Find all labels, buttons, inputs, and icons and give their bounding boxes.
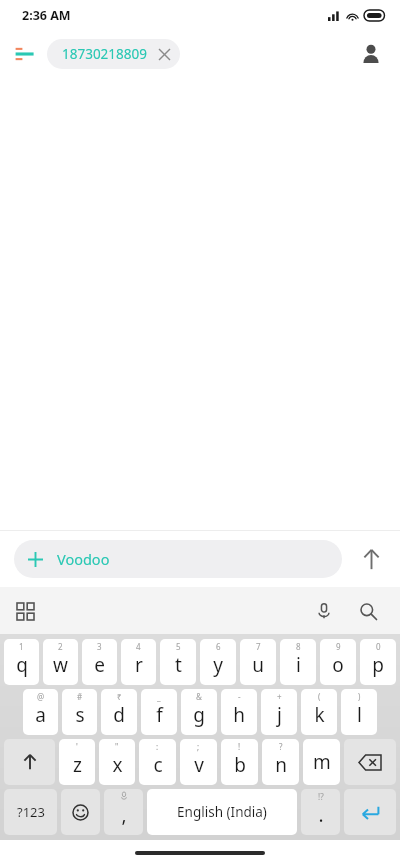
- staticText: -: [238, 691, 241, 702]
- button[interactable]: &: [181, 689, 217, 735]
- staticText: t: [175, 652, 182, 678]
- button[interactable]: Voodoo: [14, 540, 342, 578]
- staticText: ": [115, 741, 119, 752]
- staticText: +: [277, 691, 282, 702]
- button[interactable]: Clipboard: [8, 594, 42, 628]
- staticText: 9: [336, 641, 341, 652]
- staticText: p: [372, 652, 384, 678]
- button[interactable]: 3: [82, 639, 117, 685]
- button[interactable]: 8: [280, 639, 316, 685]
- staticText: j: [277, 702, 282, 728]
- button[interactable]: ": [99, 739, 135, 785]
- staticText: s: [75, 702, 85, 728]
- button[interactable]: -: [221, 689, 257, 735]
- button[interactable]: 0: [360, 639, 396, 685]
- staticText: ,: [121, 802, 127, 828]
- button[interactable]: ): [341, 689, 377, 735]
- button[interactable]: 5: [160, 639, 196, 685]
- staticText: x: [112, 752, 123, 778]
- staticText: #: [77, 691, 83, 702]
- staticText: e: [94, 652, 105, 678]
- staticText: v: [194, 752, 204, 778]
- staticText: 2: [58, 641, 63, 652]
- button[interactable]: Profile: [354, 37, 388, 71]
- button[interactable]: Menu: [8, 38, 40, 70]
- staticText: g: [193, 702, 205, 728]
- staticText: l: [357, 702, 362, 728]
- staticText: y: [213, 652, 223, 678]
- staticText: a: [35, 702, 46, 728]
- button[interactable]: 1: [4, 639, 39, 685]
- staticText: ': [76, 741, 78, 752]
- button[interactable]: ': [59, 739, 95, 785]
- staticText: k: [314, 702, 325, 728]
- button[interactable]: :: [139, 739, 176, 785]
- staticText: 6: [216, 641, 221, 652]
- button[interactable]: 6: [200, 639, 236, 685]
- button[interactable]: 9: [320, 639, 356, 685]
- staticText: c: [153, 752, 163, 778]
- staticText: &: [196, 691, 202, 702]
- button[interactable]: ₹: [101, 689, 137, 735]
- staticText: (: [318, 691, 321, 702]
- button[interactable]: (: [301, 689, 337, 735]
- staticText: w: [53, 652, 68, 678]
- staticText: u: [252, 652, 264, 678]
- button[interactable]: !: [221, 739, 258, 785]
- staticText: z: [73, 752, 82, 778]
- staticText: ): [358, 691, 361, 702]
- staticText: 3: [97, 641, 102, 652]
- staticText: !: [238, 741, 241, 752]
- button[interactable]: English (India): [147, 789, 297, 835]
- staticText: _: [157, 691, 161, 702]
- staticText: :: [156, 741, 159, 752]
- button[interactable]: Search: [350, 593, 386, 629]
- staticText: 7: [256, 641, 261, 652]
- button[interactable]: !?: [301, 789, 340, 835]
- staticText: i: [296, 652, 301, 678]
- button[interactable]: Enter: [344, 789, 396, 835]
- staticText: ₹: [117, 691, 122, 702]
- staticText: 8: [296, 641, 301, 652]
- button[interactable]: ;: [180, 739, 217, 785]
- staticText: f: [156, 702, 163, 728]
- staticText: !?: [318, 791, 324, 802]
- staticText: 1: [19, 641, 24, 652]
- button[interactable]: 18730218809: [47, 39, 180, 69]
- staticText: d: [113, 702, 125, 728]
- staticText: n: [275, 752, 287, 778]
- button[interactable]: m: [303, 739, 340, 785]
- button[interactable]: Backspace: [344, 739, 396, 785]
- button[interactable]: _: [141, 689, 177, 735]
- staticText: b: [234, 752, 246, 778]
- staticText: @: [37, 691, 45, 702]
- button[interactable]: #: [62, 689, 97, 735]
- button[interactable]: ,: [104, 789, 143, 835]
- staticText: 2:36 AM: [22, 7, 71, 24]
- button[interactable]: 4: [121, 639, 156, 685]
- button[interactable]: Shift: [4, 739, 55, 785]
- staticText: ?: [279, 741, 283, 752]
- staticText: ;: [197, 741, 200, 752]
- staticText: 4: [136, 641, 141, 652]
- button[interactable]: ?123: [4, 789, 57, 835]
- button[interactable]: Emoji: [61, 789, 100, 835]
- staticText: ?123: [17, 803, 45, 821]
- staticText: 5: [176, 641, 181, 652]
- button[interactable]: ?: [262, 739, 299, 785]
- staticText: English (India): [177, 803, 267, 821]
- staticText: r: [135, 652, 143, 678]
- staticText: 0: [376, 641, 381, 652]
- staticText: 18730218809: [62, 45, 147, 63]
- button[interactable]: Send: [342, 531, 400, 587]
- staticText: Voodoo: [57, 549, 110, 569]
- button[interactable]: @: [23, 689, 58, 735]
- staticText: o: [332, 652, 344, 678]
- button[interactable]: 2: [43, 639, 78, 685]
- button[interactable]: Voice input: [306, 593, 342, 629]
- staticText: .: [318, 802, 324, 828]
- staticText: m: [313, 749, 331, 775]
- button[interactable]: +: [261, 689, 297, 735]
- button[interactable]: 7: [240, 639, 276, 685]
- staticText: q: [16, 652, 28, 678]
